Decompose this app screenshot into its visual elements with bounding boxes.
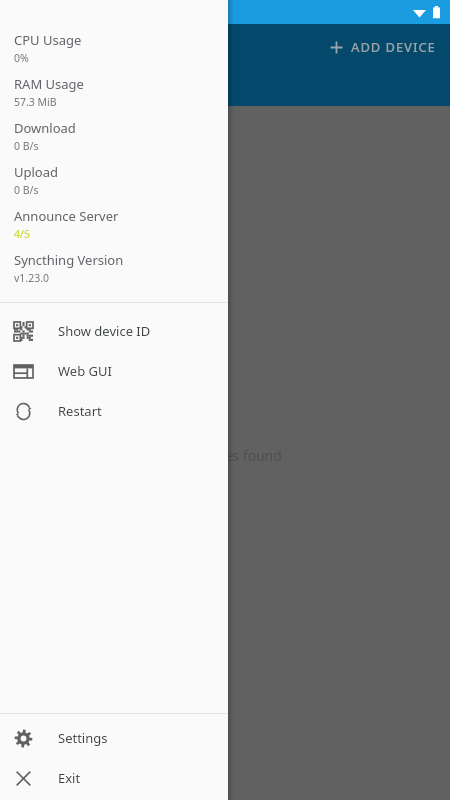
- staticText: No devices found: [168, 446, 282, 465]
- button[interactable]: Show device ID: [0, 311, 228, 351]
- staticText: 0%: [14, 51, 29, 65]
- button[interactable]: Announce Server: [0, 202, 228, 246]
- button[interactable]: Exit: [0, 758, 228, 798]
- button[interactable]: Restart: [0, 391, 228, 431]
- button[interactable]: Web GUI: [0, 351, 228, 391]
- staticText: v1.23.0: [14, 271, 49, 285]
- staticText: Show device ID: [58, 322, 151, 340]
- staticText: Web GUI: [58, 362, 112, 380]
- staticText: RAM Usage: [14, 75, 84, 93]
- staticText: Upload: [14, 163, 59, 181]
- button[interactable]: RAM Usage: [0, 70, 228, 114]
- button[interactable]: DEVICES: [0, 66, 120, 106]
- button[interactable]: ADD DEVICE: [321, 33, 444, 61]
- button[interactable]: Settings: [0, 718, 228, 758]
- staticText: 4/5: [14, 227, 30, 241]
- staticText: 0 B/s: [14, 139, 39, 153]
- staticText: Syncthing Version: [14, 251, 124, 269]
- staticText: 0 B/s: [14, 183, 39, 197]
- button[interactable]: CPU Usage: [0, 26, 228, 70]
- button[interactable]: Download: [0, 114, 228, 158]
- button[interactable]: Upload: [0, 158, 228, 202]
- staticText: Announce Server: [14, 207, 119, 225]
- staticText: Restart: [58, 402, 102, 420]
- staticText: DEVICES: [31, 77, 90, 95]
- staticText: 57.3 MiB: [14, 95, 57, 109]
- staticText: Download: [14, 119, 76, 137]
- staticText: Settings: [58, 729, 108, 747]
- button[interactable]: Syncthing Version: [0, 246, 228, 290]
- staticText: Exit: [58, 769, 81, 787]
- staticText: CPU Usage: [14, 31, 82, 49]
- staticText: ADD DEVICE: [351, 38, 436, 56]
